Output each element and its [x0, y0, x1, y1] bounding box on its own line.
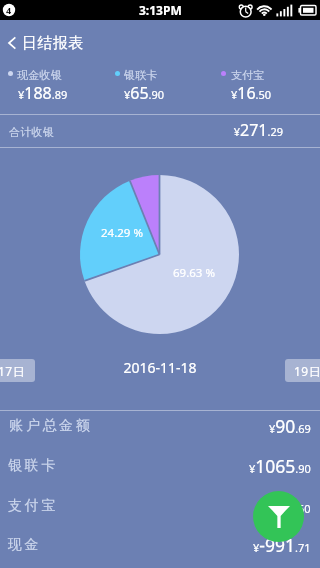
- staticText: 17日: [0, 363, 26, 379]
- staticText: 银联卡: [8, 457, 58, 475]
- button[interactable]: 支付宝: [0, 486, 320, 526]
- button[interactable]: 账户总金额: [0, 406, 320, 446]
- staticText: 69.63 %: [134, 265, 254, 281]
- staticText: 现金收银: [17, 68, 63, 82]
- staticText: ¥-25.50: [263, 494, 311, 518]
- staticText: 合计收银: [9, 125, 55, 139]
- staticText: ¥188.89: [18, 82, 68, 104]
- staticText: ¥1065.90: [249, 454, 311, 478]
- staticText: 支付宝: [8, 497, 58, 515]
- button[interactable]: 19日: [285, 359, 320, 382]
- staticText: 2016-11-18: [100, 358, 220, 377]
- staticText: 4: [6, 4, 12, 16]
- button[interactable]: 银联卡: [0, 446, 320, 486]
- staticText: 银联卡: [124, 68, 158, 82]
- button[interactable]: Back: [0, 24, 320, 62]
- staticText: 现金: [8, 536, 42, 554]
- staticText: 支付宝: [231, 68, 265, 82]
- staticText: ¥90.69: [269, 414, 311, 438]
- staticText: 3:13PM: [139, 2, 182, 18]
- button[interactable]: Filter: [253, 491, 304, 542]
- button[interactable]: 现金: [0, 525, 320, 565]
- staticText: 日结报表: [22, 34, 84, 53]
- staticText: ¥16.50: [231, 82, 272, 104]
- staticText: ¥-991.71: [253, 533, 311, 557]
- button[interactable]: 17日: [0, 359, 35, 382]
- other: Back: [8, 36, 16, 50]
- staticText: 24.29 %: [62, 225, 182, 241]
- staticText: 账户总金额: [8, 417, 91, 435]
- staticText: ¥65.90: [124, 82, 165, 104]
- staticText: ¥271.29: [123, 119, 283, 141]
- staticText: 19日: [294, 363, 320, 379]
